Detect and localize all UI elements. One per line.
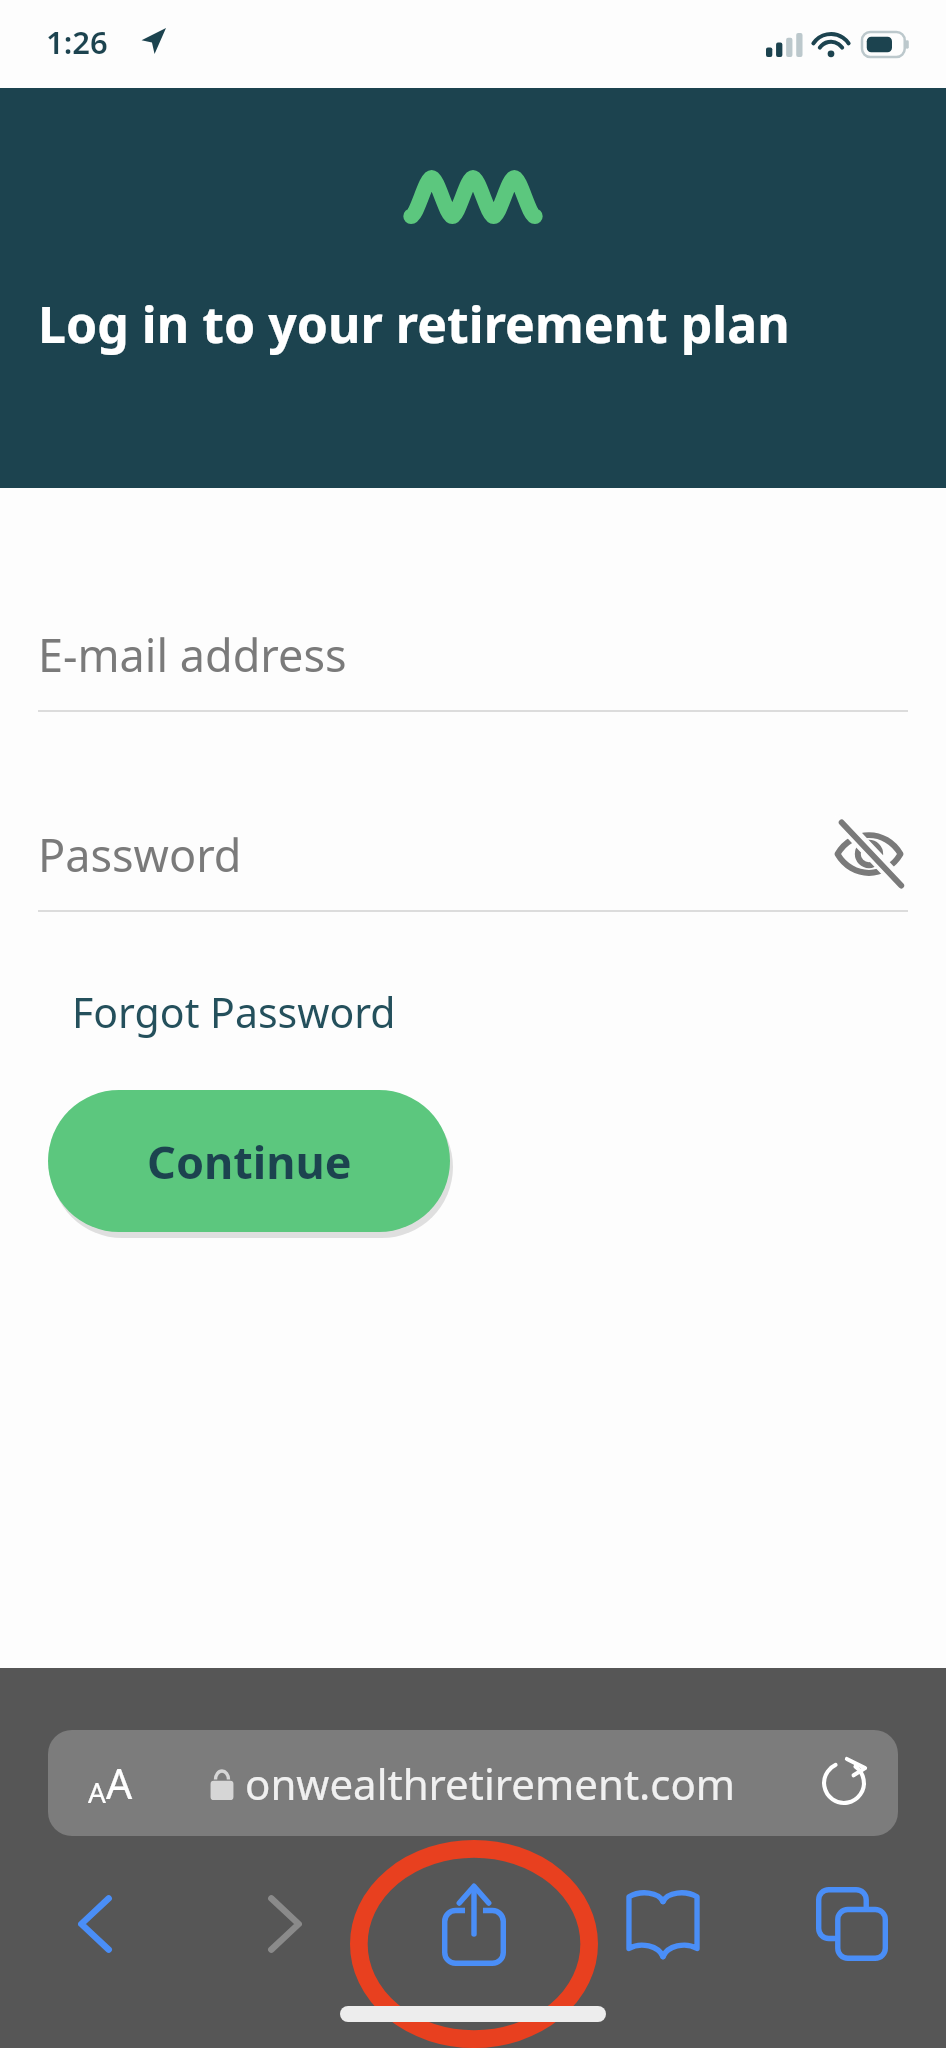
- staticText: E-mail address: [38, 624, 347, 685]
- button[interactable]: Password: [38, 798, 908, 910]
- button[interactable]: E-mail address: [38, 598, 908, 710]
- button[interactable]: Page settings: [48, 1730, 898, 1836]
- staticText: Password: [38, 824, 830, 885]
- button[interactable]: Back: [0, 1858, 190, 1990]
- staticText: A: [106, 1755, 133, 1811]
- button[interactable]: Reload: [808, 1747, 880, 1819]
- button[interactable]: Tabs: [757, 1858, 946, 1990]
- button[interactable]: Page settings: [84, 1751, 137, 1815]
- staticText: Log in to your retirement plan: [38, 290, 790, 358]
- staticText: Continue: [147, 1131, 352, 1192]
- staticText: onwealthretirement.com: [245, 1755, 736, 1812]
- staticText: 1:26: [46, 21, 108, 63]
- button[interactable]: Show password: [830, 815, 908, 893]
- button[interactable]: Continue: [48, 1090, 450, 1232]
- button[interactable]: Share: [379, 1858, 568, 1990]
- staticText: Forgot Password: [72, 984, 396, 1040]
- staticText: A: [88, 1773, 106, 1811]
- button[interactable]: Forward: [190, 1858, 379, 1990]
- button[interactable]: Forgot Password: [54, 968, 414, 1056]
- button[interactable]: Bookmarks: [568, 1858, 757, 1990]
